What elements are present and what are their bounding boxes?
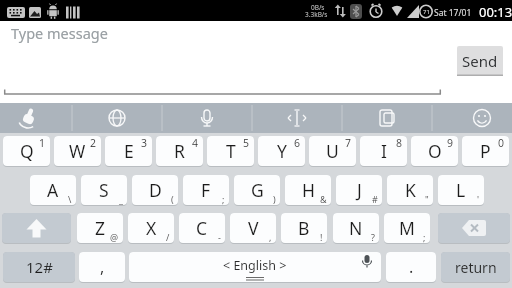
staticText: P — [480, 139, 491, 163]
button[interactable]: N — [333, 213, 379, 243]
staticText: 3.3kB/s — [305, 10, 328, 19]
button[interactable]: M — [384, 213, 430, 243]
button[interactable]: , — [79, 252, 125, 282]
staticText: I — [381, 139, 387, 163]
button[interactable]: A — [30, 175, 76, 205]
staticText: V — [248, 216, 259, 240]
button[interactable] — [432, 103, 512, 133]
staticText: ! — [320, 231, 323, 243]
button[interactable]: return — [441, 252, 510, 282]
staticText: Z — [95, 216, 106, 240]
button[interactable] — [162, 103, 252, 133]
button[interactable]: U — [309, 136, 356, 166]
button[interactable]: B — [281, 213, 327, 243]
staticText: 8 — [396, 136, 403, 150]
staticText: < English > — [223, 257, 287, 274]
button[interactable]: L — [438, 175, 484, 205]
button[interactable]: P — [462, 136, 509, 166]
staticText: O — [428, 139, 442, 163]
staticText: 00:13 — [479, 3, 512, 21]
button[interactable]: Q — [3, 136, 50, 166]
staticText: F — [201, 178, 211, 202]
staticText: M — [399, 216, 415, 240]
button[interactable]: 12# — [3, 252, 75, 282]
staticText: ) — [273, 193, 276, 205]
button[interactable]: . — [386, 252, 436, 282]
staticText: Y — [277, 139, 287, 163]
staticText: 4 — [192, 136, 199, 150]
staticText: # — [372, 193, 378, 205]
staticText: 7 — [345, 136, 352, 150]
staticText: \ — [68, 193, 72, 205]
staticText: Sat 17/01 — [434, 7, 472, 19]
button[interactable]: O — [411, 136, 458, 166]
button[interactable]: H — [285, 175, 331, 205]
staticText: 1 — [39, 136, 46, 150]
staticText: E — [124, 139, 134, 163]
button[interactable]: F — [183, 175, 229, 205]
staticText: _ — [119, 193, 123, 205]
staticText: G — [251, 178, 264, 202]
button[interactable]: Y — [258, 136, 305, 166]
button[interactable]: K — [387, 175, 433, 205]
staticText: 0 — [498, 136, 505, 150]
button[interactable]: Z — [77, 213, 123, 243]
staticText: @ — [110, 231, 119, 243]
staticText: 0B/s — [311, 3, 325, 12]
staticText: 12# — [26, 257, 53, 277]
button[interactable] — [342, 103, 432, 133]
staticText: L — [456, 178, 466, 202]
button[interactable]: J — [336, 175, 382, 205]
staticText: N — [349, 216, 363, 240]
button[interactable]: E — [105, 136, 152, 166]
button[interactable] — [438, 213, 510, 243]
staticText: & — [320, 193, 327, 205]
button[interactable]: D — [132, 175, 178, 205]
button[interactable]: X — [128, 213, 174, 243]
button[interactable] — [2, 213, 71, 243]
button[interactable]: W — [54, 136, 101, 166]
button[interactable] — [72, 103, 162, 133]
staticText: Q — [20, 139, 34, 163]
staticText: 71 — [423, 8, 430, 16]
staticText: T — [226, 139, 236, 163]
staticText: . — [409, 256, 414, 278]
staticText: ( — [171, 193, 174, 205]
staticText: Send — [462, 51, 498, 71]
staticText: - — [218, 231, 221, 243]
staticText: B — [298, 216, 310, 240]
staticText: ? — [371, 231, 375, 243]
button[interactable]: I — [360, 136, 407, 166]
staticText: C — [196, 216, 208, 240]
staticText: S — [99, 178, 109, 202]
button[interactable]: Send — [457, 46, 503, 76]
staticText: ; — [423, 231, 426, 243]
staticText: D — [149, 178, 162, 202]
button[interactable]: G — [234, 175, 280, 205]
staticText: 3 — [141, 136, 148, 150]
staticText: A — [47, 178, 59, 202]
staticText: , — [269, 231, 272, 243]
button[interactable] — [252, 103, 342, 133]
staticText: 2 — [90, 136, 97, 150]
button[interactable] — [0, 103, 72, 133]
button[interactable]: < English > — [129, 252, 381, 282]
staticText: W — [69, 139, 86, 163]
button[interactable]: T — [207, 136, 254, 166]
staticText: 6 — [294, 136, 301, 150]
staticText: 9 — [447, 136, 454, 150]
staticText: Type message — [11, 23, 108, 43]
staticText: H — [302, 178, 315, 202]
staticText: K — [405, 178, 416, 202]
staticText: 5 — [243, 136, 250, 150]
staticText: ; — [222, 193, 225, 205]
button[interactable]: S — [81, 175, 127, 205]
staticText: , — [100, 256, 105, 278]
button[interactable]: R — [156, 136, 203, 166]
staticText: " — [425, 193, 429, 205]
button[interactable]: C — [179, 213, 225, 243]
button[interactable]: V — [230, 213, 276, 243]
staticText: X — [146, 216, 157, 240]
staticText: / — [166, 231, 170, 243]
staticText: ' — [477, 193, 480, 205]
